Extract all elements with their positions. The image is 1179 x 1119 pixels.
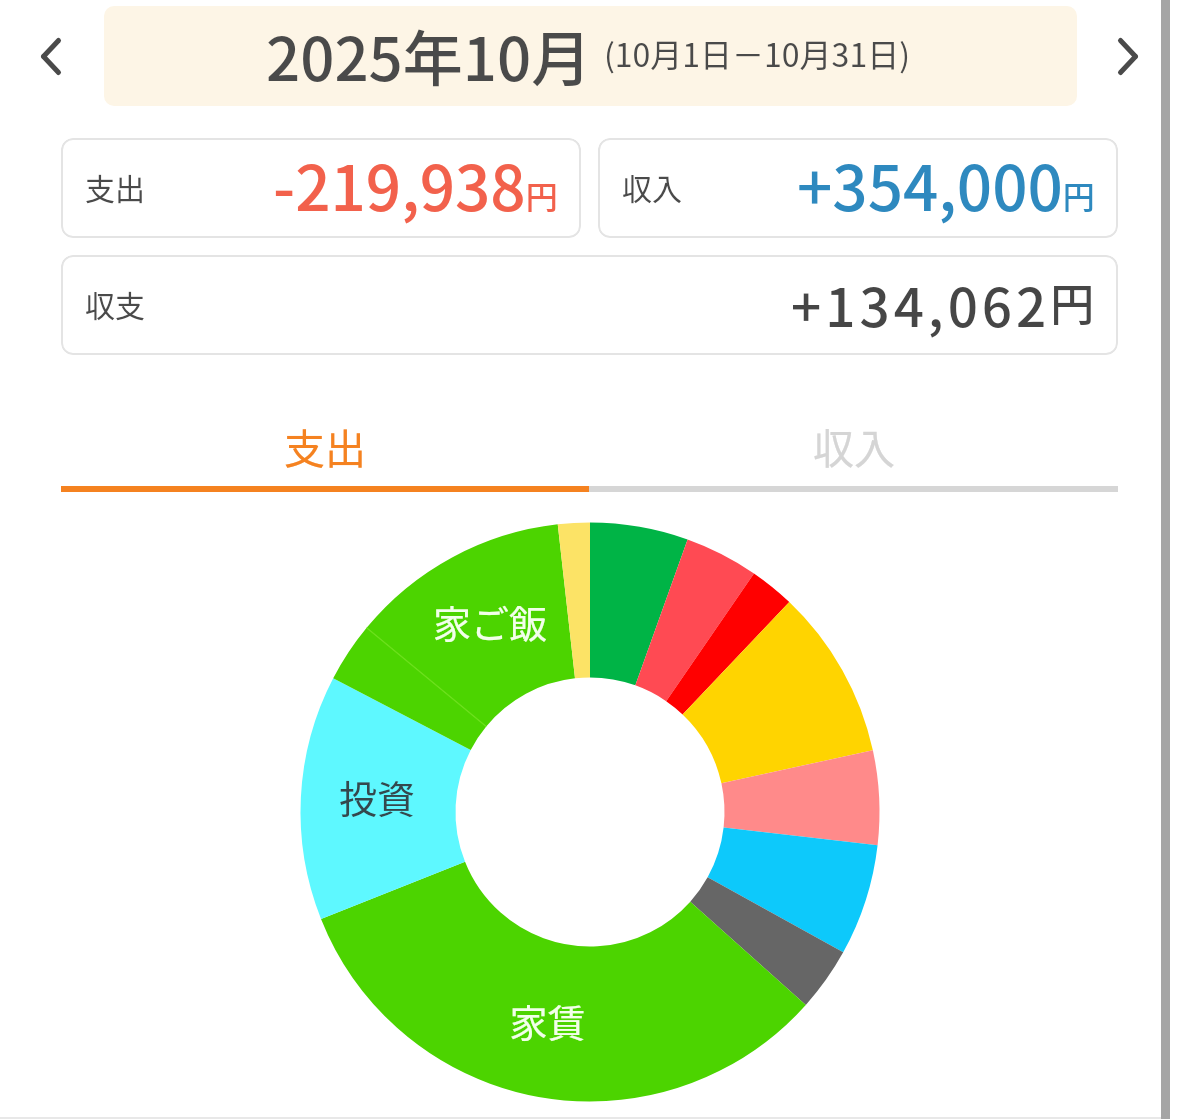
staticText: 収支 — [85, 282, 145, 325]
button[interactable]: 収支 — [61, 255, 1118, 355]
button[interactable]: 2025年10月 — [104, 6, 1077, 106]
staticText: +354,000円 — [797, 139, 1095, 229]
button[interactable]: 収入 — [589, 407, 1118, 483]
button[interactable]: 収入 — [598, 138, 1118, 238]
staticText: 支出 — [85, 165, 145, 208]
button[interactable]: 支出 — [61, 138, 581, 238]
staticText: 2025年10月 — [266, 11, 592, 98]
staticText: +134,062円 — [791, 266, 1095, 343]
button[interactable]: Previous month — [41, 38, 61, 75]
staticText: 収入 — [813, 416, 895, 475]
button[interactable]: Next month — [1118, 38, 1138, 75]
staticText: (10月1日－10月31日) — [604, 30, 910, 76]
staticText: 収入 — [622, 165, 682, 208]
staticText: -219,938円 — [273, 139, 558, 229]
staticText: 支出 — [284, 416, 366, 475]
button[interactable]: 支出 — [61, 407, 589, 483]
